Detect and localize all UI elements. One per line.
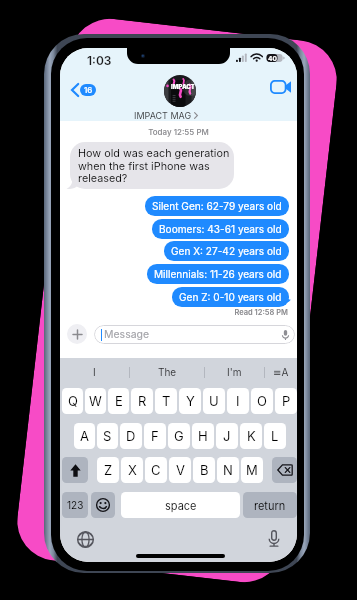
button[interactable]: Back to 16 conversations <box>66 79 100 101</box>
button[interactable]: L <box>264 423 286 449</box>
button[interactable]: U <box>203 388 225 414</box>
staticText: Silent Gen: 62-79 years old <box>152 200 282 212</box>
button[interactable]: Switch keyboard <box>74 528 96 550</box>
button[interactable]: I <box>227 388 249 414</box>
button[interactable]: Z <box>97 457 119 483</box>
staticText: B <box>200 462 209 478</box>
button[interactable]: return <box>243 492 297 518</box>
button[interactable]: T <box>155 388 177 414</box>
button[interactable]: IMPACT MAG <box>134 110 198 121</box>
button[interactable]: S <box>97 423 118 449</box>
button[interactable]: Boomers: 43-61 years old <box>152 219 289 239</box>
staticText: E <box>115 393 123 409</box>
staticText: U <box>209 393 219 409</box>
staticText: R <box>138 393 147 409</box>
staticText: 123 <box>67 499 84 511</box>
staticText: C <box>151 462 161 478</box>
button[interactable]: B <box>193 457 215 483</box>
staticText: Message <box>104 328 150 341</box>
staticText: space <box>165 499 197 512</box>
staticText: IMPACT <box>171 83 195 90</box>
staticText: J <box>223 428 231 444</box>
button[interactable]: Video call <box>267 77 294 97</box>
staticText: ≡A <box>273 366 289 378</box>
staticText: D <box>126 428 136 444</box>
staticText: I <box>93 366 96 378</box>
staticText: Y <box>186 393 195 409</box>
staticText: P <box>282 393 291 409</box>
button[interactable]: C <box>145 457 167 483</box>
staticText: K <box>247 428 256 444</box>
button[interactable]: N <box>217 457 239 483</box>
staticText: N <box>223 462 233 478</box>
button[interactable]: Gen Z: 0-10 years old <box>172 287 289 307</box>
button[interactable]: H <box>192 423 214 449</box>
button[interactable]: IMPACT MAG profile <box>164 75 196 107</box>
button[interactable]: Text formatting <box>265 358 297 386</box>
staticText: G <box>174 428 184 444</box>
button[interactable]: D <box>120 423 142 449</box>
staticText: Boomers: 43-61 years old <box>159 223 282 235</box>
staticText: O <box>257 393 267 409</box>
staticText: Millennials: 11-26 years old <box>154 268 282 280</box>
button[interactable]: O <box>251 388 273 414</box>
staticText: I <box>236 393 240 409</box>
button[interactable]: P <box>275 388 297 414</box>
button[interactable]: Dictate <box>263 527 285 549</box>
button[interactable]: G <box>168 423 190 449</box>
staticText: A <box>80 428 89 444</box>
button[interactable]: K <box>240 423 262 449</box>
staticText: How old was each generation when the fir… <box>78 147 230 184</box>
button[interactable]: J <box>216 423 238 449</box>
button[interactable]: Q <box>62 388 83 414</box>
staticText: F <box>151 428 159 444</box>
staticText: H <box>198 428 208 444</box>
button[interactable]: E <box>108 388 129 414</box>
button[interactable]: M <box>241 457 263 483</box>
button[interactable]: Shift <box>62 457 88 483</box>
button[interactable]: Add attachment <box>67 324 87 344</box>
button[interactable]: Millennials: 11-26 years old <box>147 264 289 284</box>
button[interactable]: I'm <box>205 358 264 386</box>
button[interactable]: R <box>131 388 153 414</box>
button[interactable]: W <box>85 388 106 414</box>
staticText: Read 12:58 PM <box>60 308 288 317</box>
staticText: 1:03 <box>87 53 112 68</box>
button[interactable]: A <box>74 423 95 449</box>
staticText: M <box>246 462 258 478</box>
staticText: I'm <box>227 366 242 378</box>
button[interactable]: Y <box>179 388 201 414</box>
staticText: Today 12:55 PM <box>60 127 297 137</box>
button[interactable]: space <box>121 492 240 518</box>
button[interactable]: Emoji <box>91 492 115 518</box>
staticText: 40 <box>268 55 277 63</box>
staticText: The <box>158 366 177 378</box>
button[interactable]: Backspace <box>272 457 297 483</box>
staticText: T <box>162 393 171 409</box>
button[interactable]: X <box>121 457 143 483</box>
staticText: X <box>128 462 137 478</box>
button[interactable]: F <box>144 423 166 449</box>
staticText: V <box>176 462 185 478</box>
button[interactable]: Silent Gen: 62-79 years old <box>145 196 289 216</box>
staticText: Gen X: 27-42 years old <box>171 245 282 257</box>
button[interactable]: V <box>169 457 191 483</box>
button[interactable]: 123 <box>62 492 88 518</box>
staticText: S <box>103 428 112 444</box>
button[interactable]: How old was each generation when the fir… <box>70 142 234 189</box>
staticText: W <box>89 393 102 409</box>
button[interactable]: Gen X: 27-42 years old <box>164 241 289 261</box>
staticText: Gen Z: 0-10 years old <box>179 291 282 303</box>
button[interactable]: I <box>60 358 129 386</box>
button[interactable]: Message <box>94 325 295 344</box>
staticText: Z <box>104 462 113 478</box>
staticText: return <box>254 499 286 512</box>
staticText: L <box>271 428 279 444</box>
button[interactable]: The <box>130 358 204 386</box>
staticText: 16 <box>84 85 93 95</box>
staticText: IMPACT MAG <box>134 110 192 121</box>
staticText: Q <box>68 393 78 409</box>
